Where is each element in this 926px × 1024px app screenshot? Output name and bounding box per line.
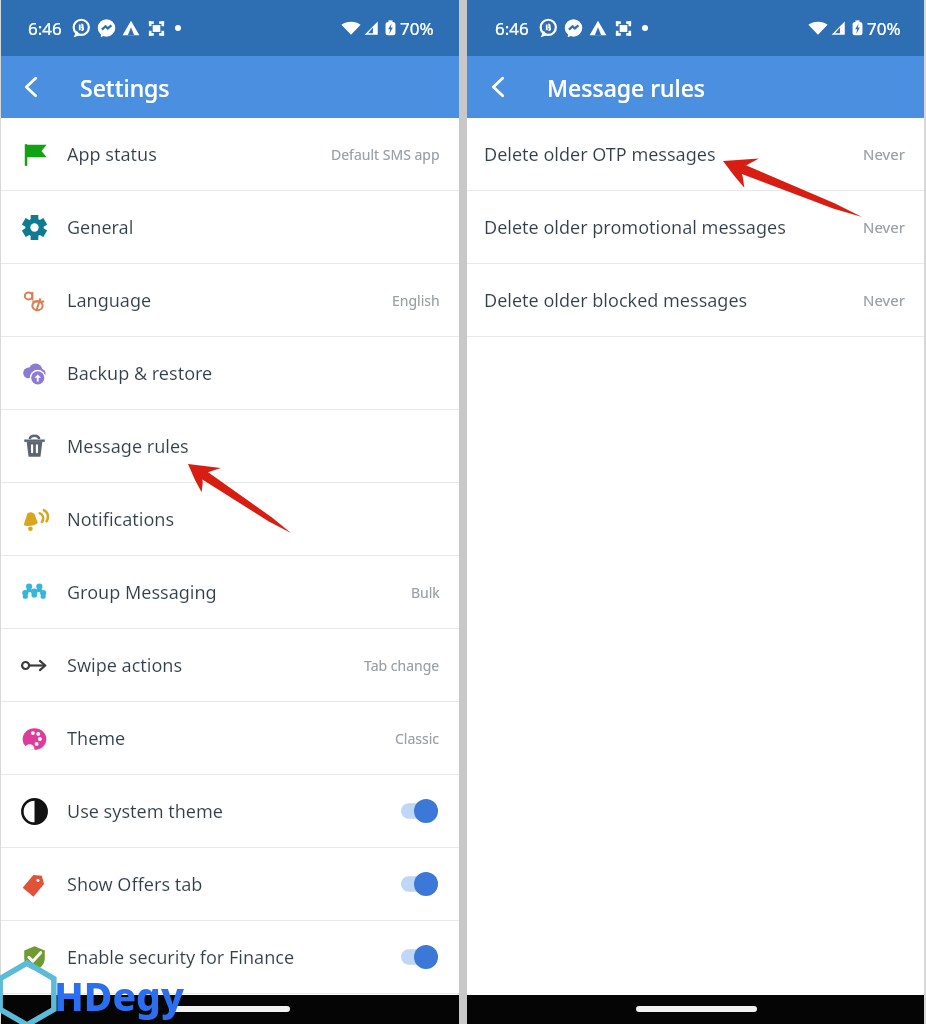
staticText: Group Messaging [67,580,217,605]
button[interactable]: App status [0,118,459,190]
button[interactable]: Theme [0,702,459,774]
staticText: Default SMS app [331,145,440,164]
staticText: Swipe actions [67,653,183,678]
staticText: Classic [395,729,440,748]
button[interactable]: Enable security for Finance [0,921,459,993]
staticText: Language [67,288,152,313]
button[interactable]: Use system theme [0,775,459,847]
staticText: Never [863,290,905,310]
staticText: Never [863,217,905,237]
button[interactable]: Show Offers tab toggle, on [401,872,438,896]
staticText: Settings [80,72,170,103]
staticText: Delete older OTP messages [484,142,716,167]
staticText: Notifications [67,507,175,532]
button[interactable]: General [0,191,459,263]
staticText: General [67,215,134,240]
staticText: Tab change [364,656,440,675]
staticText: Backup & restore [67,361,213,386]
staticText: 6:46 [495,17,529,40]
staticText: Use system theme [67,799,223,824]
button[interactable]: Swipe actions [0,629,459,701]
button[interactable]: Delete older blocked messages [467,264,926,336]
staticText: Show Offers tab [67,872,203,897]
button[interactable]: Back [467,56,529,118]
staticText: Enable security for Finance [67,945,295,970]
staticText: Never [863,144,905,164]
staticText: 6:46 [28,17,62,40]
button[interactable]: Delete older promotional messages [467,191,926,263]
staticText: 70% [867,17,901,40]
staticText: Delete older blocked messages [484,288,748,313]
staticText: Theme [67,726,126,751]
button[interactable]: Notifications [0,483,459,555]
button[interactable]: Delete older OTP messages [467,118,926,190]
button[interactable]: Message rules [0,410,459,482]
button[interactable]: Show Offers tab [0,848,459,920]
button[interactable]: Language [0,264,459,336]
button[interactable]: Group Messaging [0,556,459,628]
staticText: Message rules [67,434,189,459]
staticText: App status [67,142,157,167]
button[interactable]: Backup & restore [0,337,459,409]
staticText: HDegy [54,969,184,1022]
staticText: English [392,291,440,310]
staticText: 70% [400,17,434,40]
staticText: Bulk [411,583,440,602]
button[interactable]: Back [0,56,62,118]
button[interactable]: Use system theme toggle, on [401,799,438,823]
staticText: Message rules [547,72,706,103]
button[interactable]: Enable security for Finance toggle, on [401,945,438,969]
staticText: Delete older promotional messages [484,215,786,240]
